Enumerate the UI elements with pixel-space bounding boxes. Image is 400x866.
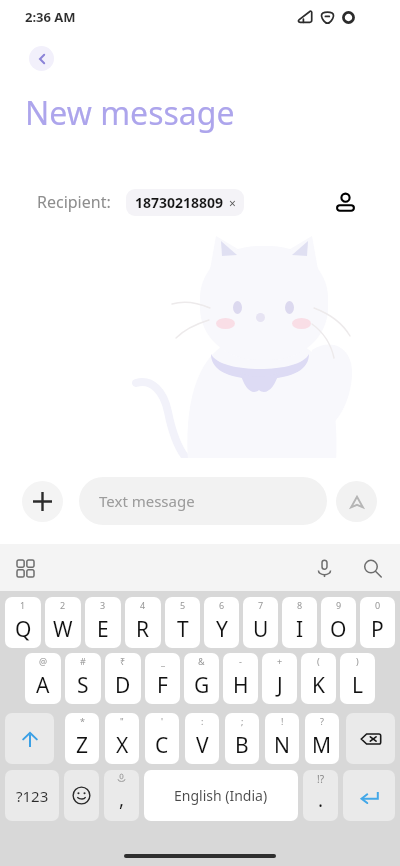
staticText: - [239, 655, 242, 667]
staticText: A [36, 671, 50, 700]
staticText: !? [317, 772, 325, 786]
staticText: Q [15, 615, 32, 644]
button[interactable]: English (India) [144, 770, 298, 821]
button[interactable]: ? [305, 713, 339, 764]
button[interactable]: ' [145, 713, 179, 764]
staticText: , [119, 786, 125, 812]
staticText: . [318, 787, 324, 813]
staticText: Recipient: [37, 191, 111, 213]
button[interactable]: ) [340, 653, 375, 704]
button[interactable]: ?123 [5, 770, 59, 821]
staticText: Text message [99, 491, 195, 511]
staticText: R [136, 615, 150, 644]
staticText: @ [39, 655, 48, 667]
button[interactable]: : [185, 713, 219, 764]
button[interactable]: ! [265, 713, 299, 764]
staticText: X [116, 731, 129, 760]
staticText: O [330, 615, 347, 644]
staticText: J [277, 671, 283, 700]
staticText: 4 [140, 599, 146, 611]
button[interactable]: ₹ [105, 653, 141, 704]
staticText: " [120, 715, 124, 727]
button[interactable]: Text message [79, 477, 327, 525]
button[interactable]: 6 [204, 597, 239, 648]
staticText: M [312, 731, 332, 760]
button[interactable]: 9 [321, 597, 356, 648]
staticText: 0 [375, 599, 381, 611]
button[interactable]: - [223, 653, 258, 704]
staticText: English (India) [174, 786, 268, 805]
button[interactable]: " [105, 713, 139, 764]
staticText: U [253, 615, 269, 644]
staticText: E [97, 615, 109, 644]
staticText: 8 [297, 599, 303, 611]
staticText: D [115, 671, 131, 700]
button[interactable]: Emoji [64, 770, 99, 821]
staticText: W [53, 615, 73, 644]
staticText: 3 [100, 599, 106, 611]
staticText: Y [216, 615, 228, 644]
button[interactable]: & [184, 653, 219, 704]
button[interactable]: 1 [5, 597, 41, 648]
staticText: T [177, 615, 189, 644]
button[interactable]: , [104, 770, 139, 821]
button[interactable]: + [262, 653, 297, 704]
staticText: 2:36 AM [25, 8, 76, 26]
staticText: ( [317, 655, 320, 667]
button[interactable]: Search [358, 554, 386, 582]
staticText: 2 [60, 599, 66, 611]
staticText: ?123 [16, 786, 49, 806]
staticText: F [157, 671, 168, 700]
button[interactable]: !? [303, 770, 338, 821]
staticText: & [198, 655, 205, 667]
button[interactable]: Add contact [329, 186, 361, 218]
staticText: + [277, 655, 283, 667]
button[interactable]: Send [336, 481, 377, 522]
button[interactable]: Voice input [310, 554, 338, 582]
button[interactable]: 7 [243, 597, 278, 648]
button[interactable]: 18730218809 [126, 189, 244, 216]
staticText: B [235, 731, 249, 760]
staticText: ) [356, 655, 359, 667]
staticText: ! [281, 715, 284, 727]
button[interactable]: # [65, 653, 101, 704]
staticText: ? [320, 715, 324, 727]
button[interactable]: _ [145, 653, 180, 704]
staticText: # [80, 655, 86, 667]
button[interactable]: 3 [85, 597, 121, 648]
staticText: 5 [180, 599, 186, 611]
staticText: 6 [219, 599, 225, 611]
staticText: Z [76, 731, 89, 760]
staticText: N [274, 731, 290, 760]
button[interactable]: Shift [5, 713, 54, 764]
button[interactable]: Clipboard [11, 554, 39, 582]
button[interactable]: ( [301, 653, 336, 704]
staticText: H [233, 671, 249, 700]
staticText: New message [25, 91, 235, 135]
staticText: 18730218809 [135, 193, 224, 212]
button[interactable]: 8 [282, 597, 317, 648]
staticText: _ [161, 655, 165, 667]
staticText: I [296, 615, 304, 644]
staticText: × [229, 195, 236, 211]
button[interactable]: 0 [360, 597, 395, 648]
staticText: : [201, 715, 204, 727]
button[interactable]: ; [225, 713, 259, 764]
button[interactable]: @ [25, 653, 61, 704]
staticText: P [371, 615, 384, 644]
staticText: 9 [336, 599, 342, 611]
button[interactable]: * [65, 713, 99, 764]
staticText: V [196, 731, 209, 760]
staticText: G [194, 671, 210, 700]
button[interactable]: Back [29, 46, 54, 71]
button[interactable]: 5 [165, 597, 200, 648]
staticText: C [155, 731, 169, 760]
staticText: 7 [258, 599, 264, 611]
button[interactable]: 2 [45, 597, 81, 648]
staticText: ₹ [120, 655, 126, 667]
staticText: S [77, 671, 89, 700]
button[interactable]: Add attachment [22, 481, 63, 522]
button[interactable]: Enter [343, 770, 395, 821]
button[interactable]: Backspace [346, 713, 395, 764]
button[interactable]: 4 [125, 597, 161, 648]
